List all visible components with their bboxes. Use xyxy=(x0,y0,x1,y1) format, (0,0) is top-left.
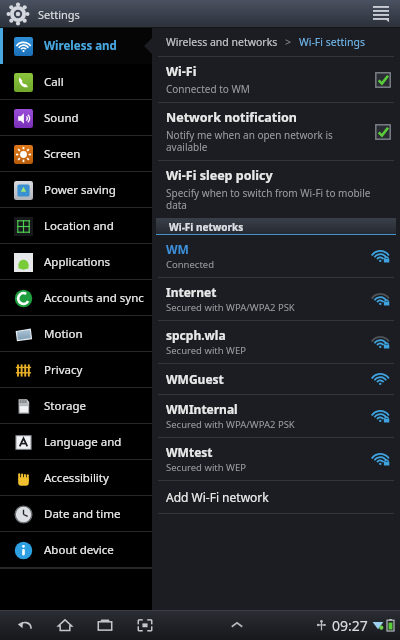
button[interactable]: Screen xyxy=(0,136,152,172)
button[interactable]: Power saving mode xyxy=(0,172,152,208)
button[interactable]: Location and security xyxy=(0,208,152,244)
staticText: Call xyxy=(44,74,64,90)
button[interactable]: Menu xyxy=(368,1,394,27)
staticText: Sound xyxy=(44,110,79,126)
staticText: Internet xyxy=(166,284,217,300)
button[interactable]: Sound xyxy=(0,100,152,136)
staticText: Applications xyxy=(44,254,111,270)
button[interactable]: Wi-Fi xyxy=(152,57,400,102)
staticText: Privacy xyxy=(44,362,83,378)
staticText: Specify when to switch from Wi-Fi to mob… xyxy=(166,186,371,212)
button[interactable]: spcph.wla xyxy=(152,321,400,363)
button[interactable]: Call xyxy=(0,64,152,100)
staticText: WMtest xyxy=(166,444,213,460)
staticText: Notify me when an open network is availa… xyxy=(166,128,333,154)
staticText: Settings xyxy=(38,7,80,22)
staticText: Date and time xyxy=(44,506,121,522)
button[interactable]: Expand xyxy=(226,614,248,636)
button[interactable]: Date and time xyxy=(0,496,152,532)
staticText: spcph.wla xyxy=(166,327,226,343)
button[interactable]: WMtest xyxy=(152,438,400,480)
button[interactable] xyxy=(374,123,392,141)
button[interactable]: Language and input xyxy=(0,424,152,460)
staticText: Accounts and sync xyxy=(44,290,144,306)
staticText: Secured with WPA/WPA2 PSK xyxy=(166,418,295,431)
button[interactable]: Accounts and sync xyxy=(0,280,152,316)
staticText: > xyxy=(285,35,292,49)
staticText: Accessibility xyxy=(44,470,109,486)
staticText: Language and input xyxy=(44,434,146,450)
button[interactable]: WMGuest xyxy=(152,364,400,394)
button[interactable]: Wireless and networks xyxy=(0,28,152,64)
staticText: Secured with WEP xyxy=(166,461,246,474)
button[interactable]: Add Wi-Fi network xyxy=(152,481,400,513)
staticText: Wi-Fi settings xyxy=(299,35,365,49)
staticText: Storage xyxy=(44,398,86,414)
staticText: About device xyxy=(44,542,114,558)
button[interactable]: About device xyxy=(0,532,152,568)
staticText: Wi-Fi sleep policy xyxy=(166,167,273,184)
button[interactable]: Wi-Fi sleep policy xyxy=(152,161,400,218)
button[interactable]: Applications xyxy=(0,244,152,280)
staticText: Motion xyxy=(44,326,83,342)
staticText: WM xyxy=(166,241,189,257)
staticText: Secured with WEP xyxy=(166,344,246,357)
button[interactable]: Recent apps xyxy=(92,613,118,637)
staticText: Location and security xyxy=(44,218,146,234)
staticText: Wi-Fi networks xyxy=(169,220,244,234)
button[interactable] xyxy=(374,71,392,89)
staticText: Wireless and networks xyxy=(166,35,278,49)
staticText: Network notification xyxy=(166,109,297,126)
staticText: Connected xyxy=(166,258,215,271)
button[interactable]: Home xyxy=(52,613,78,637)
staticText: WMGuest xyxy=(166,371,224,387)
button[interactable]: Accessibility xyxy=(0,460,152,496)
button[interactable]: Back xyxy=(12,613,38,637)
button[interactable]: Storage xyxy=(0,388,152,424)
staticText: Add Wi-Fi network xyxy=(166,489,269,505)
staticText: Wi-Fi xyxy=(166,63,197,80)
button[interactable]: Internet xyxy=(152,278,400,320)
staticText: Connected to WM xyxy=(166,82,250,96)
staticText: Wireless and networks xyxy=(44,38,146,54)
staticText: 09:27 xyxy=(332,616,368,635)
staticText: Power saving mode xyxy=(44,182,146,198)
staticText: WMInternal xyxy=(166,401,238,417)
button[interactable]: Wi-Fi settings xyxy=(299,35,365,49)
button[interactable]: Screenshot xyxy=(132,613,158,637)
staticText: Screen xyxy=(44,146,81,162)
button[interactable]: Motion xyxy=(0,316,152,352)
staticText: Secured with WPA/WPA2 PSK xyxy=(166,301,295,314)
button[interactable]: Privacy xyxy=(0,352,152,388)
button[interactable]: WM xyxy=(152,235,400,277)
button[interactable]: WMInternal xyxy=(152,395,400,437)
button[interactable]: Network notification xyxy=(152,103,400,160)
